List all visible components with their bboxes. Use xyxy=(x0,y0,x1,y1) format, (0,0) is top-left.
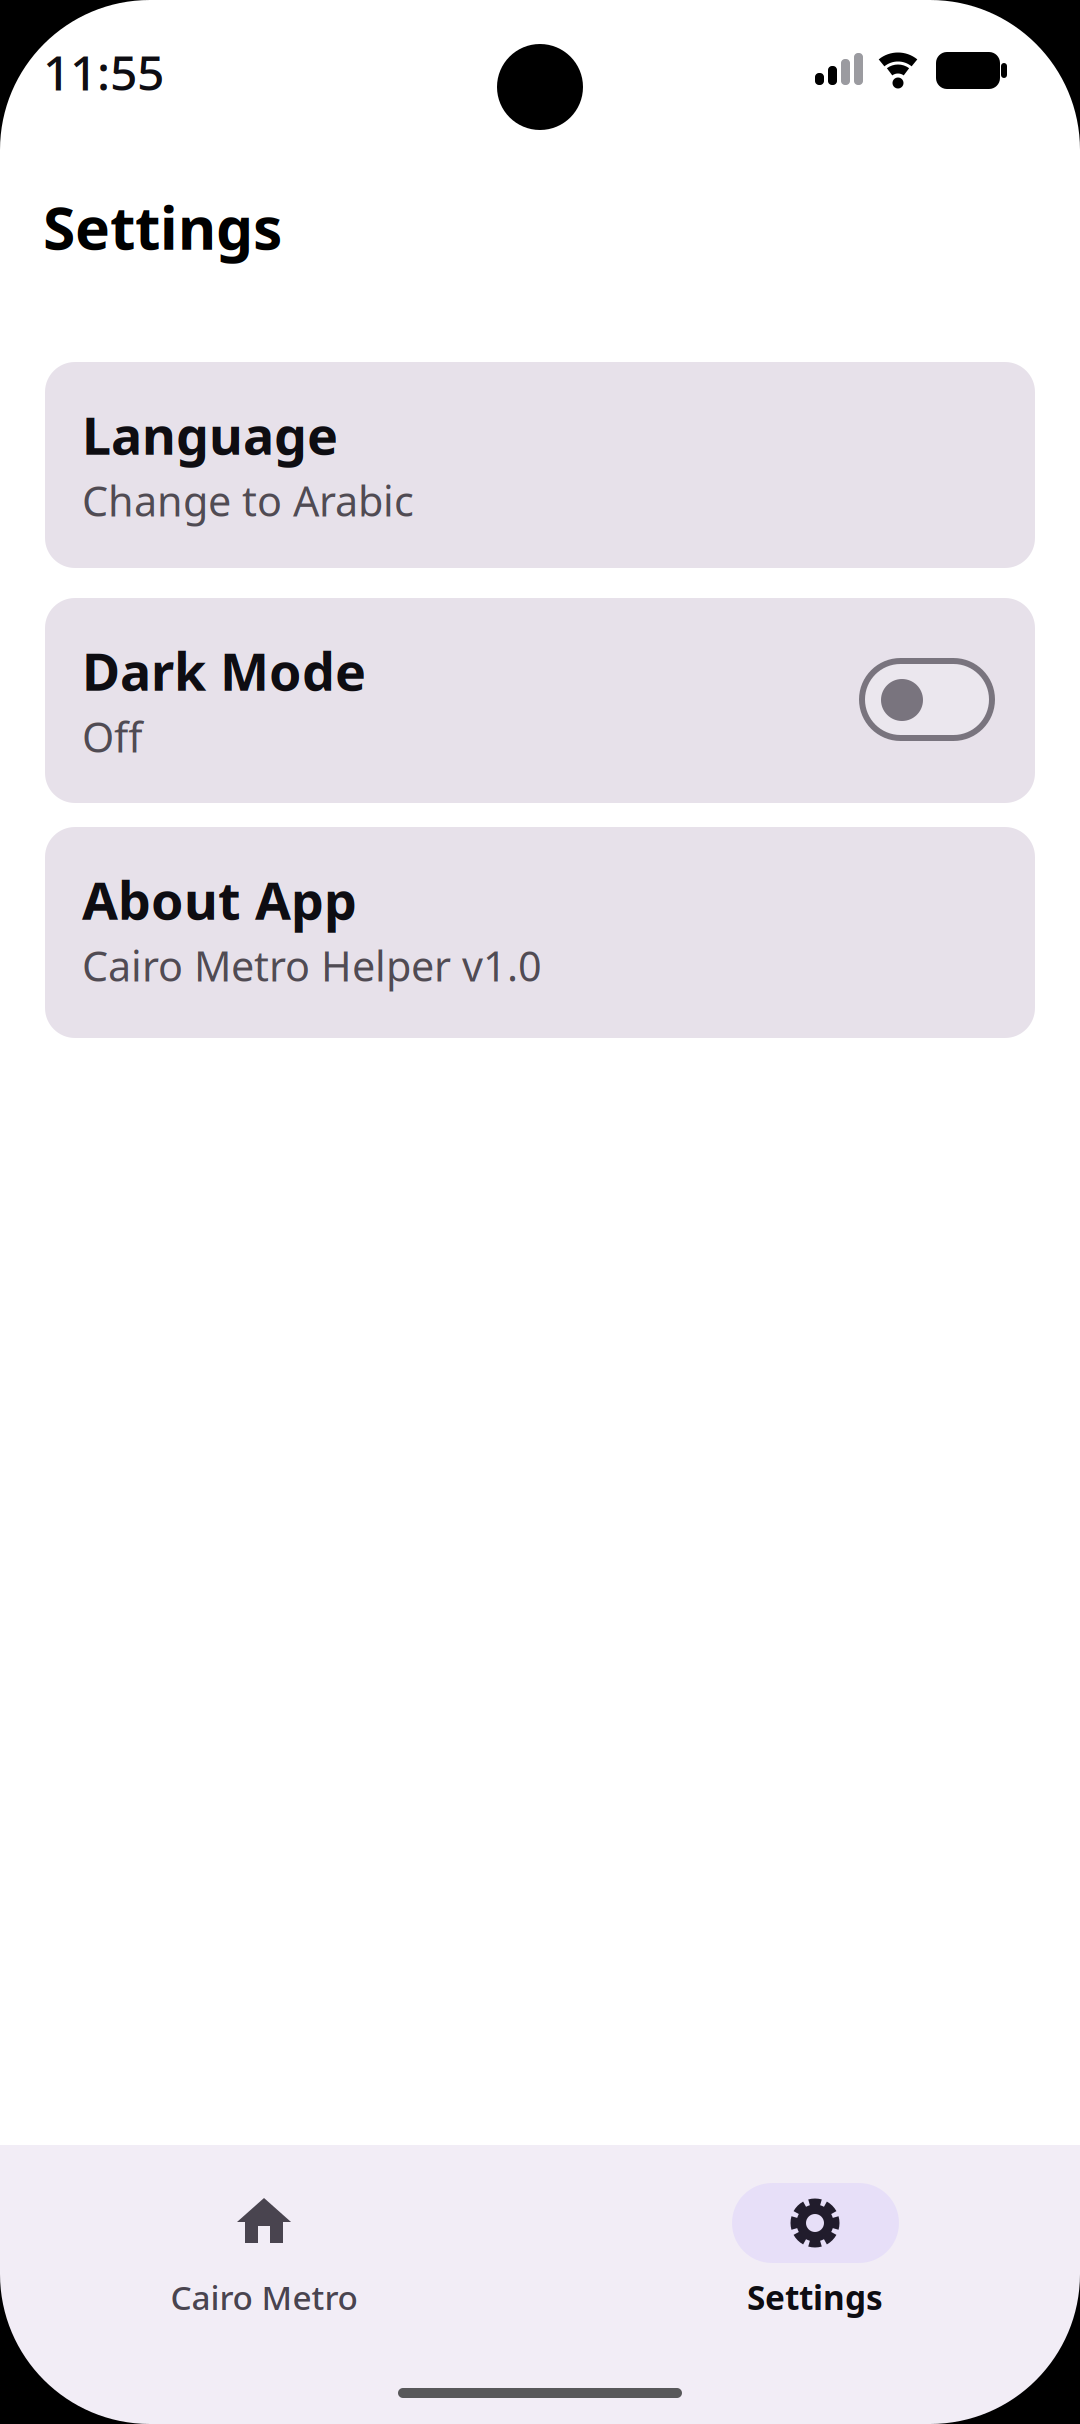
staticText: About App xyxy=(82,865,357,934)
button[interactable]: Language xyxy=(45,362,1035,568)
button[interactable]: Cairo Metro xyxy=(84,2198,444,2378)
staticText: 11:55 xyxy=(43,40,164,104)
staticText: Change to Arabic xyxy=(82,473,414,528)
staticText: Cairo Metro xyxy=(170,2275,357,2319)
staticText: Dark Mode xyxy=(82,636,366,705)
staticText: Language xyxy=(82,400,338,469)
staticText: Settings xyxy=(43,188,282,266)
button[interactable]: Settings xyxy=(635,2183,995,2363)
staticText: Settings xyxy=(747,2275,883,2319)
staticText: Off xyxy=(82,709,142,764)
staticText: Cairo Metro Helper v1.0 xyxy=(82,938,542,993)
button[interactable]: About App xyxy=(45,827,1035,1038)
button[interactable]: Dark Mode xyxy=(859,658,995,741)
button[interactable]: Dark Mode xyxy=(45,598,1035,803)
